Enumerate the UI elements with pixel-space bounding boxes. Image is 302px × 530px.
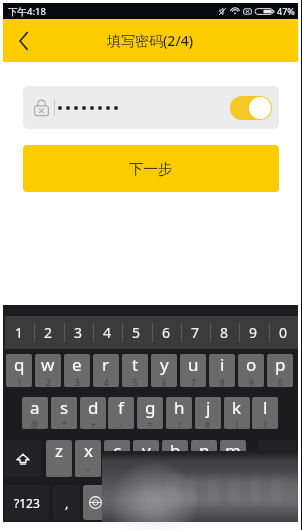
button[interactable]: 切换语言 <box>83 485 107 520</box>
button[interactable]: 回车 <box>253 485 296 520</box>
staticText: c <box>113 440 122 462</box>
staticText: w <box>41 354 55 376</box>
button[interactable]: m <box>220 440 246 477</box>
staticText: ) <box>264 419 267 429</box>
staticText: h <box>174 397 185 419</box>
button[interactable]: l <box>252 397 278 429</box>
staticText: , <box>65 494 69 512</box>
staticText: @ <box>31 419 39 429</box>
staticText: 1 <box>17 377 22 387</box>
staticText: ?123 <box>14 495 40 511</box>
staticText: * <box>62 419 67 429</box>
staticText: l <box>263 397 268 419</box>
button[interactable]: 4 <box>93 316 122 349</box>
button[interactable]: v <box>133 440 159 477</box>
staticText: f <box>118 397 124 419</box>
button[interactable]: ?123 <box>5 485 49 520</box>
staticText: s <box>60 397 69 419</box>
staticText: 下午4:18 <box>8 5 46 18</box>
staticText: 6 <box>162 377 167 387</box>
button[interactable]: . <box>223 485 250 520</box>
button[interactable]: h <box>166 397 192 429</box>
staticText: 1 <box>15 323 24 342</box>
button[interactable]: p <box>267 354 293 387</box>
button[interactable]: f <box>108 397 134 429</box>
staticText: 2 <box>46 377 51 387</box>
button[interactable]: x <box>75 440 101 477</box>
button[interactable]: Delete <box>258 440 296 477</box>
staticText: 7 <box>191 377 196 387</box>
staticText: 5 <box>133 377 138 387</box>
staticText: 8 <box>220 323 229 342</box>
button[interactable]: Shift <box>5 440 41 477</box>
button[interactable]: n <box>191 440 217 477</box>
button[interactable]: 显示密码 <box>23 86 279 129</box>
button[interactable]: w <box>35 354 61 387</box>
button[interactable]: o <box>238 354 264 387</box>
button[interactable]: a <box>22 397 48 429</box>
button[interactable]: q <box>6 354 32 387</box>
button[interactable]: 下一步 <box>23 145 279 192</box>
staticText: v <box>142 440 151 462</box>
staticText: u <box>188 354 199 376</box>
button[interactable]: y <box>151 354 177 387</box>
button[interactable]: 1 <box>5 316 34 349</box>
button[interactable]: b <box>162 440 188 477</box>
button[interactable]: 9 <box>239 316 268 349</box>
button[interactable]: 5 <box>122 316 151 349</box>
button[interactable]: 8 <box>210 316 239 349</box>
button[interactable]: 2 <box>34 316 63 349</box>
staticText: d <box>88 397 99 419</box>
button[interactable]: e <box>64 354 90 387</box>
staticText: n <box>199 440 210 462</box>
staticText: r <box>102 354 110 376</box>
button[interactable]: z <box>46 440 72 477</box>
staticText: y <box>160 354 169 376</box>
staticText: 填写密码(2/4) <box>107 31 194 50</box>
button[interactable]: t <box>122 354 148 387</box>
staticText: k <box>232 397 242 419</box>
button[interactable]: 空格 <box>110 485 220 520</box>
button[interactable]: 6 <box>152 316 181 349</box>
button[interactable]: 显示密码 <box>230 96 272 120</box>
staticText: a <box>30 397 40 419</box>
staticText: m <box>225 440 241 462</box>
button[interactable]: d <box>80 397 106 429</box>
staticText: 9 <box>249 323 258 342</box>
staticText: 3 <box>75 377 80 387</box>
staticText: ( <box>236 419 239 429</box>
staticText: . <box>235 494 239 512</box>
staticText: j <box>206 397 211 419</box>
button[interactable]: u <box>180 354 206 387</box>
button[interactable]: 返回 <box>3 19 47 62</box>
staticText: - <box>120 419 123 429</box>
button[interactable]: 7 <box>181 316 210 349</box>
staticText: 7 <box>191 323 200 342</box>
button[interactable]: i <box>209 354 235 387</box>
staticText: z <box>55 440 63 462</box>
staticText: ! <box>203 467 206 477</box>
staticText: 0 <box>278 377 283 387</box>
button[interactable]: j <box>195 397 221 429</box>
staticText: 4 <box>103 323 112 342</box>
staticText: b <box>170 440 181 462</box>
staticText: : <box>145 467 148 477</box>
button[interactable]: g <box>137 397 163 429</box>
button[interactable]: 0 <box>269 316 298 349</box>
staticText: 8 <box>220 377 225 387</box>
staticText: / <box>178 419 181 429</box>
button[interactable]: s <box>51 397 77 429</box>
button[interactable]: c <box>104 440 130 477</box>
staticText: o <box>246 354 257 376</box>
staticText: 3 <box>74 323 83 342</box>
staticText: " <box>86 467 90 477</box>
staticText: t <box>132 354 139 376</box>
staticText: q <box>14 354 25 376</box>
staticText: i <box>220 354 225 376</box>
button[interactable]: k <box>224 397 250 429</box>
button[interactable]: r <box>93 354 119 387</box>
button[interactable]: , <box>53 485 80 520</box>
staticText: ? <box>231 467 235 477</box>
button[interactable]: 3 <box>64 316 93 349</box>
